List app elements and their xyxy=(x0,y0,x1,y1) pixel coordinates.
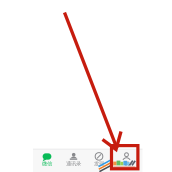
staticText: 微信 xyxy=(42,160,52,167)
staticText: 通讯录 xyxy=(66,160,81,167)
button[interactable]: 通讯录 xyxy=(0,0,172,172)
button[interactable]: 微信 xyxy=(0,0,172,172)
button[interactable]: 发现 xyxy=(0,0,172,172)
staticText: 发现 xyxy=(94,160,104,167)
staticText: 我 xyxy=(124,160,129,167)
button[interactable]: 我 xyxy=(0,0,172,172)
